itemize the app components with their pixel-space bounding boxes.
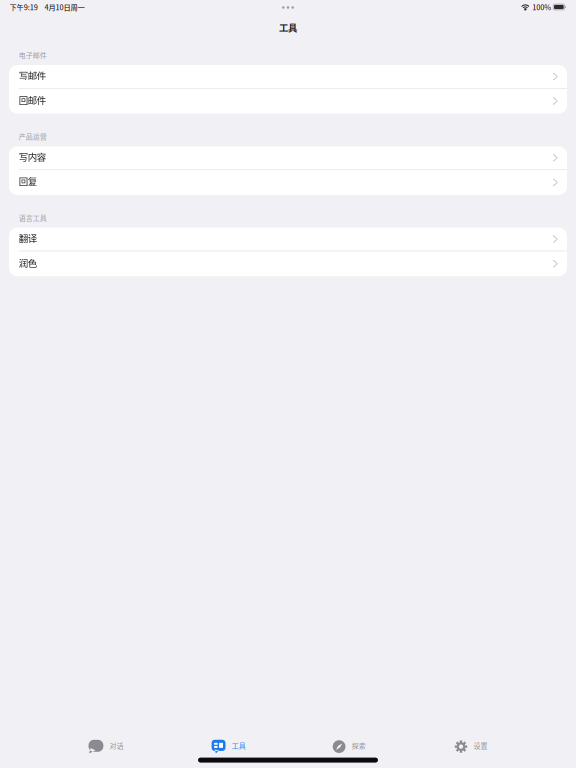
staticText: 工具 bbox=[232, 740, 246, 750]
staticText: 4月10日周一 bbox=[44, 2, 84, 12]
staticText: 工具 bbox=[279, 21, 297, 34]
staticText: 9:19 bbox=[24, 2, 38, 12]
staticText: 电子邮件 bbox=[19, 50, 47, 60]
button[interactable]: 润色 bbox=[9, 251, 567, 276]
button[interactable]: 对话 bbox=[88, 737, 124, 757]
button[interactable]: 设置 bbox=[455, 737, 487, 757]
staticText: 润色 bbox=[19, 256, 37, 269]
button[interactable]: 写内容 bbox=[9, 146, 567, 169]
button[interactable]: 写邮件 bbox=[9, 65, 567, 88]
staticText: 设置 bbox=[473, 740, 487, 750]
staticText: 产品运营 bbox=[19, 131, 47, 141]
button[interactable]: 回复 bbox=[9, 170, 567, 195]
staticText: 语言工具 bbox=[19, 212, 47, 223]
staticText: 下午 bbox=[10, 2, 24, 12]
staticText: 写邮件 bbox=[19, 68, 46, 82]
staticText: 翻译 bbox=[19, 231, 37, 245]
staticText: 对话 bbox=[110, 740, 124, 750]
button[interactable]: 回邮件 bbox=[9, 89, 567, 114]
button[interactable]: 翻译 bbox=[9, 228, 567, 251]
button[interactable]: 工具 bbox=[212, 737, 246, 757]
staticText: 100% bbox=[532, 2, 551, 12]
button[interactable]: 探索 bbox=[333, 737, 366, 757]
staticText: 探索 bbox=[352, 740, 366, 750]
staticText: 回邮件 bbox=[19, 93, 46, 107]
staticText: 回复 bbox=[19, 174, 37, 188]
staticText: 写内容 bbox=[19, 150, 46, 163]
